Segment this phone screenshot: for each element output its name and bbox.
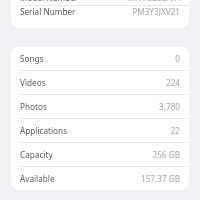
button[interactable]: Model Number [11,0,189,5]
button[interactable]: Songs [11,47,189,70]
staticText: 0 [175,53,180,64]
button[interactable]: Available [11,167,189,190]
staticText: PM3Y3JXV21 [132,6,180,17]
button[interactable]: Videos [11,71,189,94]
staticText: 157,37 GB [140,173,180,184]
staticText: Model Number [20,0,79,3]
staticText: 224 [165,77,180,88]
staticText: Available [20,173,55,184]
button[interactable]: Serial Number [11,6,189,17]
staticText: MN1O23EA/A [127,0,180,3]
staticText: 256 GB [152,149,180,160]
staticText: Photos [20,101,47,112]
staticText: Serial Number [20,6,76,17]
staticText: 22 [170,125,180,136]
staticText: Capacity [20,149,53,160]
staticText: Songs [20,53,44,64]
staticText: Applications [20,125,68,136]
staticText: Videos [20,77,46,88]
button[interactable]: Applications [11,119,189,142]
button[interactable]: Photos [11,95,189,118]
button[interactable]: Capacity [11,143,189,166]
staticText: 3,780 [159,101,180,112]
